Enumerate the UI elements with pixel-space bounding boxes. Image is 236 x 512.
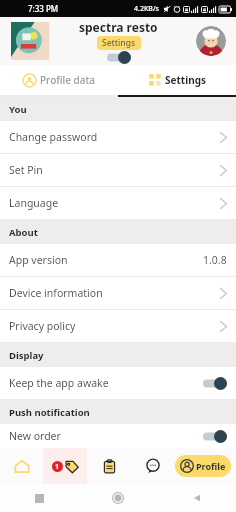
button[interactable]: Settings bbox=[102, 37, 136, 49]
staticText: Device information bbox=[9, 286, 220, 300]
button[interactable]: Offers bbox=[43, 448, 87, 484]
staticText: Profile bbox=[196, 460, 226, 472]
staticText: Profile data bbox=[40, 73, 96, 87]
staticText: Push notification bbox=[9, 406, 90, 419]
button[interactable]: New order bbox=[0, 424, 236, 448]
button[interactable]: Set Pin bbox=[0, 154, 236, 186]
staticText: New order bbox=[9, 429, 203, 443]
button[interactable]: Profile bbox=[175, 455, 231, 477]
button[interactable]: Orders bbox=[87, 448, 131, 484]
button[interactable]: Settings bbox=[118, 65, 236, 95]
staticText: Privacy policy bbox=[9, 319, 220, 333]
button[interactable]: Privacy policy bbox=[0, 310, 236, 342]
button[interactable]: App version bbox=[0, 244, 236, 276]
staticText: 7:33 PM bbox=[28, 3, 59, 14]
staticText: Keep the app awake bbox=[9, 376, 203, 390]
staticText: Language bbox=[9, 196, 220, 210]
staticText: 4.2KB/s bbox=[134, 4, 160, 14]
staticText: 1 bbox=[55, 462, 60, 472]
button[interactable]: Change password bbox=[0, 121, 236, 153]
button[interactable]: Language bbox=[0, 187, 236, 219]
button[interactable] bbox=[107, 51, 131, 64]
button[interactable]: Keep the app awake bbox=[0, 367, 236, 399]
staticText: 1.0.8 bbox=[203, 253, 227, 267]
button[interactable]: Account avatar bbox=[196, 26, 226, 56]
button[interactable]: Chat bbox=[131, 448, 175, 484]
button[interactable]: Profile data bbox=[0, 65, 118, 95]
staticText: You bbox=[9, 103, 27, 116]
staticText: Settings bbox=[165, 73, 206, 87]
staticText: Settings bbox=[102, 37, 136, 49]
staticText: Change password bbox=[9, 130, 220, 144]
staticText: Set Pin bbox=[9, 163, 220, 177]
staticText: spectra resto bbox=[79, 19, 158, 35]
staticText: About bbox=[9, 226, 38, 239]
button[interactable] bbox=[11, 22, 49, 60]
staticText: App version bbox=[9, 253, 203, 267]
staticText: Display bbox=[9, 349, 44, 362]
button[interactable]: Home bbox=[0, 448, 43, 484]
button[interactable]: Device information bbox=[0, 277, 236, 309]
